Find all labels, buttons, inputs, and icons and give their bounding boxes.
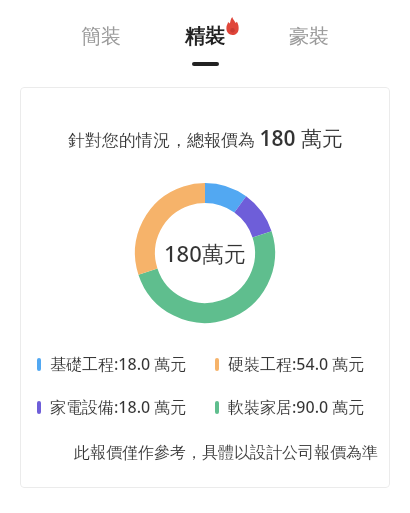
staticText: 基礎工程:18.0 萬元	[50, 353, 187, 375]
button[interactable]: 家電設備:18.0 萬元	[37, 396, 187, 418]
button[interactable]: 軟裝家居:90.0 萬元	[215, 396, 365, 418]
staticText: 針對您的情況，總報價為 180 萬元	[68, 124, 343, 153]
button[interactable]: 基礎工程:18.0 萬元	[37, 353, 187, 375]
button[interactable]: 簡装	[81, 24, 121, 49]
staticText: 家電設備:18.0 萬元	[50, 396, 187, 418]
staticText: 精裝	[185, 24, 225, 49]
staticText: 硬裝工程:54.0 萬元	[228, 353, 365, 375]
button[interactable]: 豪裝	[289, 24, 329, 49]
button[interactable]: 精裝	[185, 24, 225, 66]
staticText: 此報價僅作參考，具體以設計公司報價為準	[74, 443, 378, 463]
staticText: 180萬元	[164, 238, 246, 268]
staticText: 軟裝家居:90.0 萬元	[228, 396, 365, 418]
staticText: 簡装	[81, 24, 121, 49]
staticText: 豪裝	[289, 24, 329, 49]
button[interactable]: 硬裝工程:54.0 萬元	[215, 353, 365, 375]
